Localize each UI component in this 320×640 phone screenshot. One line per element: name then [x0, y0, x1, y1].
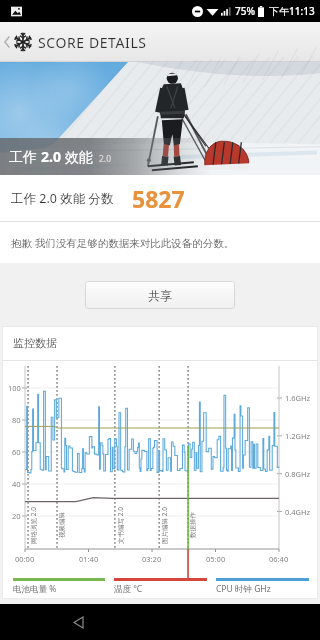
- staticText: 100: [8, 383, 21, 393]
- staticText: 效能: [61, 147, 93, 166]
- staticText: 20: [12, 511, 21, 521]
- staticText: 图片编辑 2.0: [160, 507, 169, 544]
- button[interactable]: 共享: [85, 281, 235, 309]
- staticText: 温度 °C: [114, 583, 143, 595]
- staticText: 5827: [132, 183, 185, 214]
- staticText: 0.8GHz: [285, 469, 311, 479]
- staticText: 05:00: [206, 554, 226, 564]
- staticText: 下午11:13: [269, 4, 315, 18]
- staticText: 工作 2.0 效能 分数: [11, 190, 114, 207]
- staticText: 00:00: [15, 554, 35, 564]
- staticText: 40: [12, 479, 21, 489]
- staticText: 文书编写 2.0: [116, 507, 125, 544]
- staticText: 抱歉 我们没有足够的数据来对比此设备的分数。: [11, 236, 235, 250]
- staticText: 数据操作: [189, 512, 197, 538]
- staticText: 1.6GHz: [285, 393, 311, 403]
- staticText: 01:40: [79, 554, 99, 564]
- staticText: 0.4GHz: [285, 507, 311, 517]
- staticText: 工作: [9, 147, 41, 166]
- staticText: 网络浏览 2.0: [29, 507, 38, 544]
- staticText: 2.0: [41, 147, 61, 166]
- button[interactable]: Back: [60, 604, 96, 640]
- staticText: 60: [12, 447, 21, 457]
- staticText: 03:20: [142, 554, 162, 564]
- staticText: 80: [12, 415, 21, 425]
- staticText: 电池电量 %: [13, 583, 57, 595]
- staticText: SCORE DETAILS: [38, 33, 147, 52]
- staticText: 监控数据: [13, 336, 57, 350]
- staticText: 共享: [148, 288, 172, 303]
- staticText: 视频编辑: [58, 512, 66, 538]
- staticText: 1.2GHz: [285, 431, 311, 441]
- staticText: 75%: [235, 4, 255, 18]
- staticText: CPU 时钟 GHz: [216, 583, 271, 595]
- button[interactable]: Back: [0, 22, 14, 62]
- staticText: 06:40: [269, 554, 289, 564]
- staticText: 2.0: [99, 153, 112, 165]
